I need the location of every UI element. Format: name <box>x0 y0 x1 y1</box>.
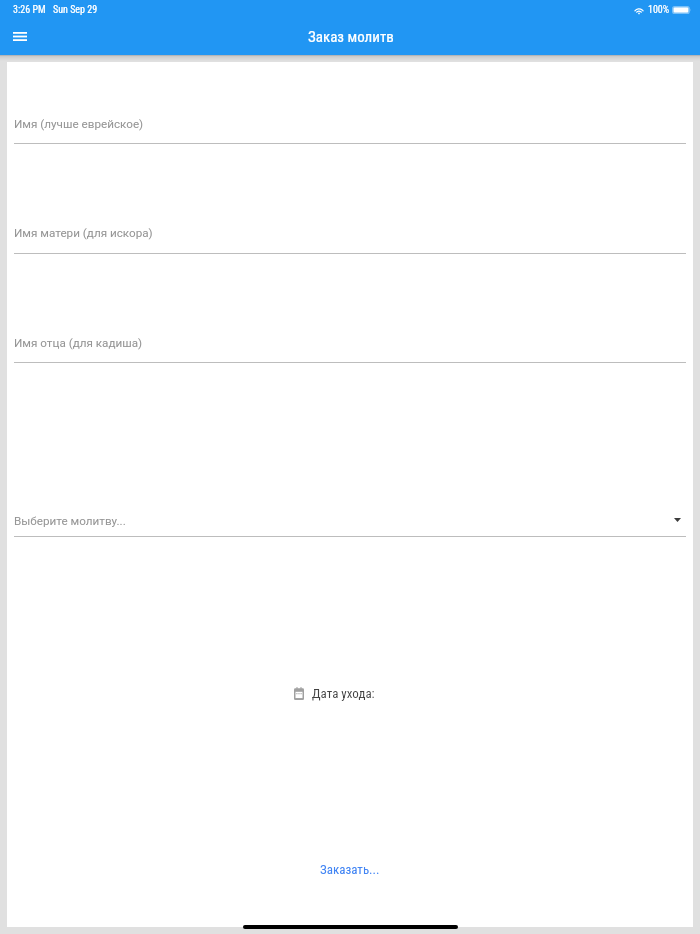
button[interactable]: Заказать... <box>310 854 390 885</box>
staticText: Имя отца (для кадиша) <box>14 336 143 350</box>
staticText: Имя (лучше еврейское) <box>14 117 144 131</box>
button[interactable]: Open navigation menu <box>9 25 31 47</box>
staticText: 3:26 PM <box>13 4 46 16</box>
staticText: Заказ молитв <box>308 28 394 46</box>
staticText: Дата ухода: <box>312 686 375 701</box>
staticText: Имя матери (для искора) <box>14 226 153 240</box>
staticText: 100% <box>648 4 670 16</box>
staticText: Выберите молитву... <box>14 514 126 528</box>
button[interactable]: Имя матери (для искора) <box>14 220 686 255</box>
staticText: Sun Sep 29 <box>53 4 98 16</box>
button[interactable]: Имя отца (для кадиша) <box>14 330 686 364</box>
button[interactable]: Дата ухода: <box>294 686 375 701</box>
button[interactable]: Выберите молитву... <box>14 508 686 538</box>
staticText: Заказать... <box>320 862 380 877</box>
button[interactable]: Имя (лучше еврейское) <box>14 111 686 145</box>
